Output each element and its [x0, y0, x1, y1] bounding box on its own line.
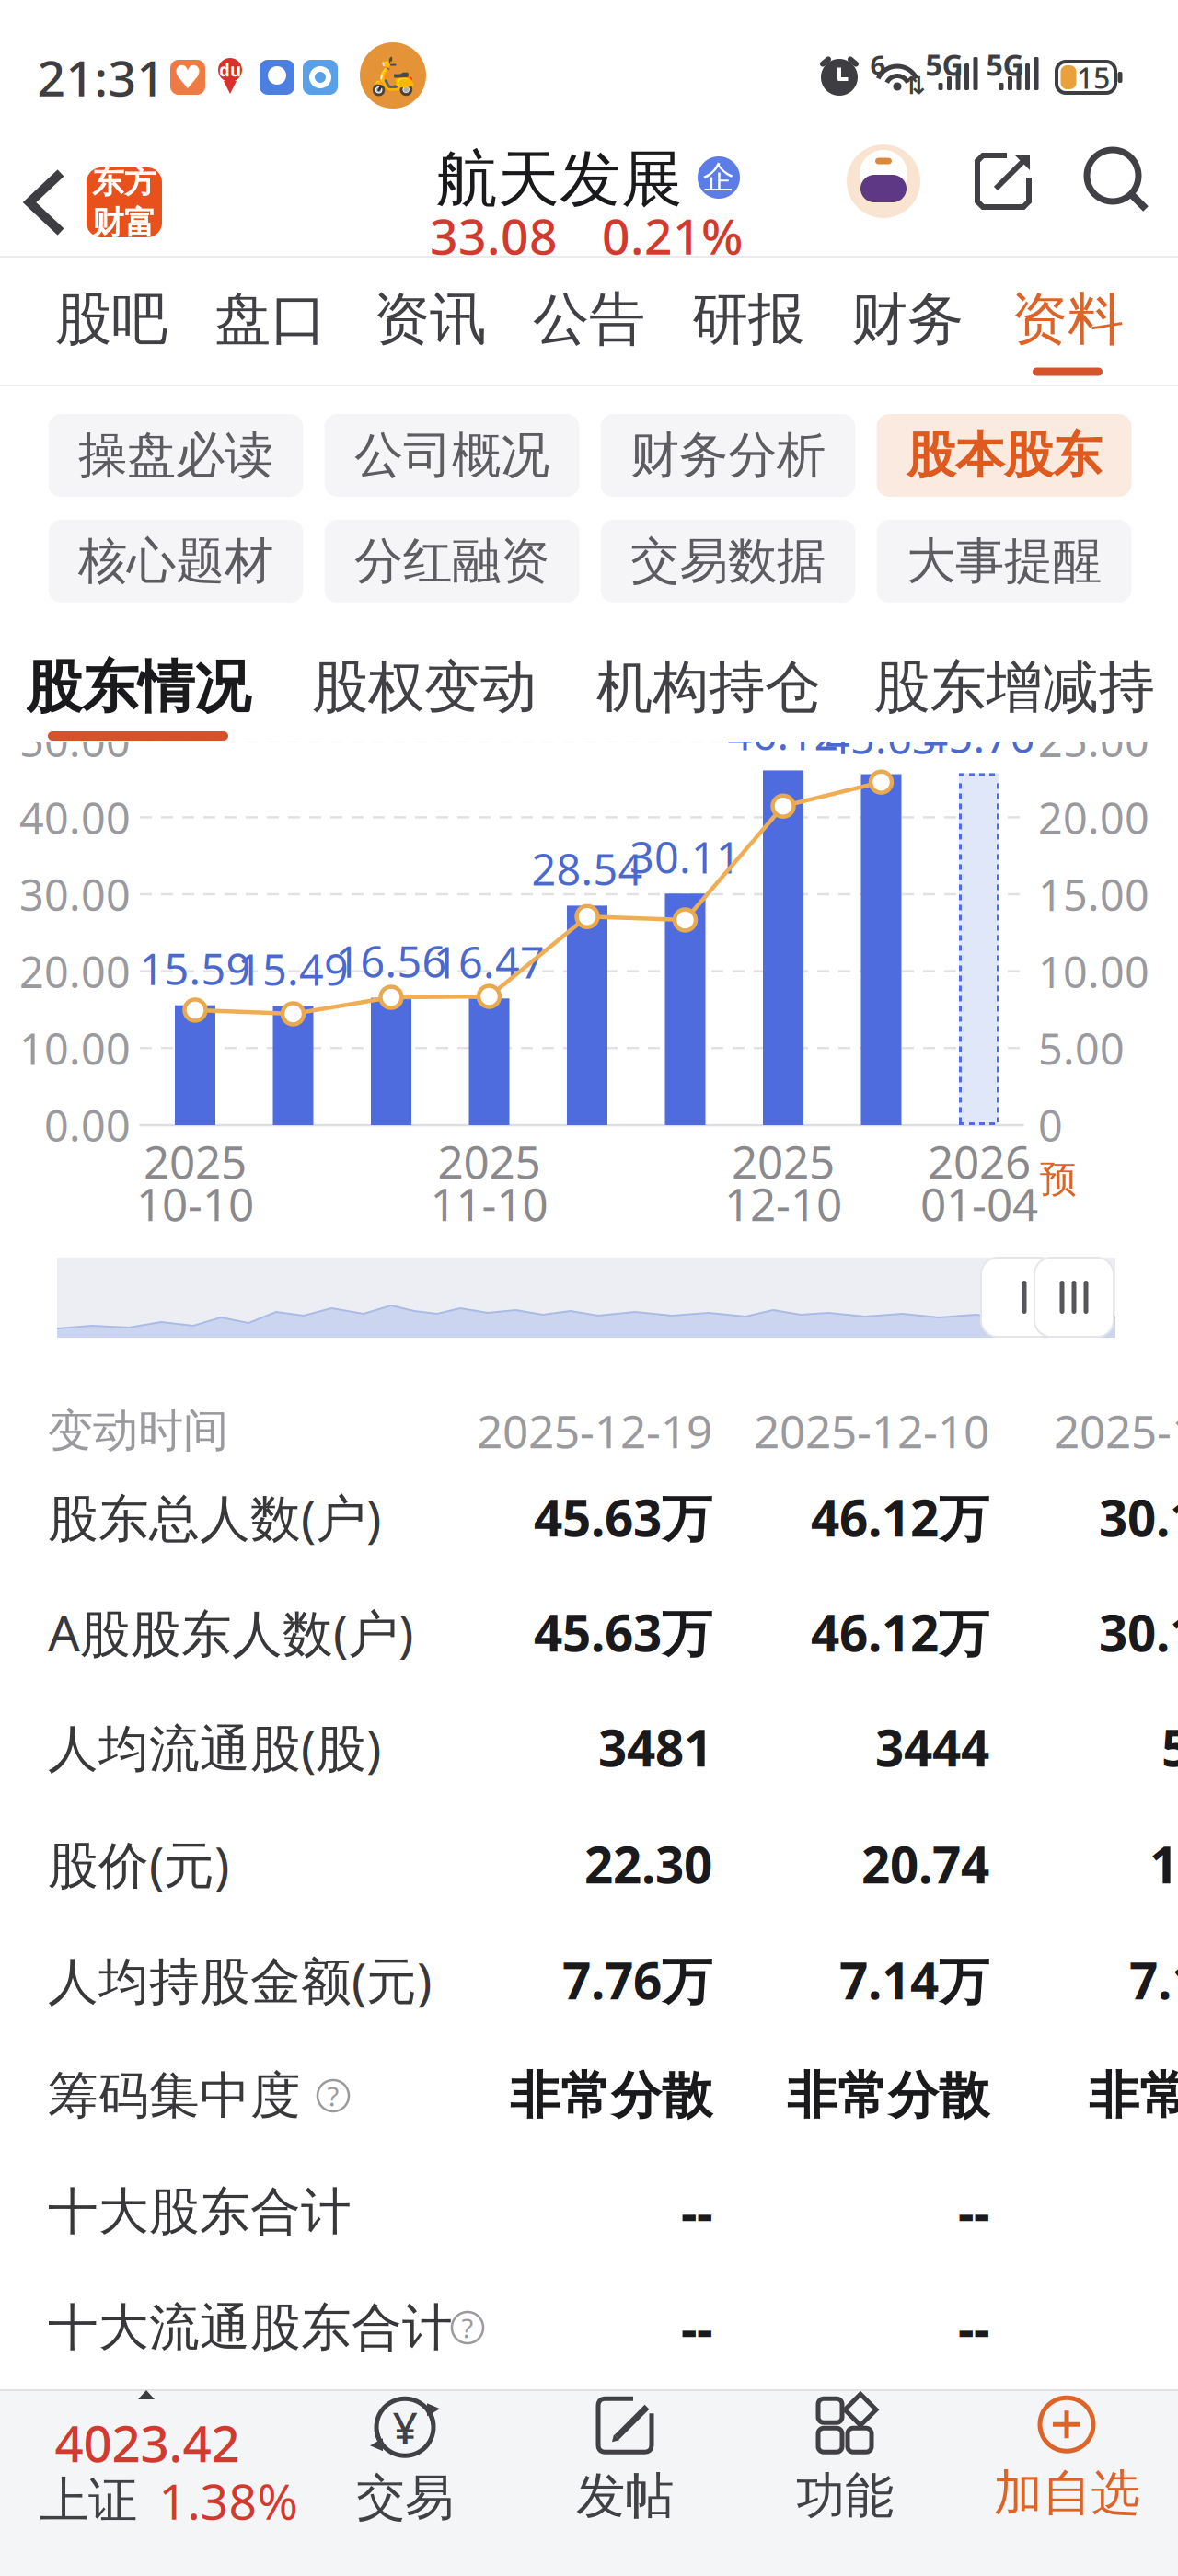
- staticText: 30.1: [1099, 1599, 1178, 1665]
- staticText: 10.00: [19, 1020, 131, 1077]
- button[interactable]: 股本股东: [877, 414, 1132, 497]
- staticText: 交易数据: [630, 531, 826, 591]
- button[interactable]: 核心题材: [48, 520, 303, 603]
- button[interactable]: AI assistant: [847, 144, 920, 218]
- staticText: 十大股东合计: [48, 2181, 352, 2242]
- staticText: ¥: [393, 2398, 417, 2456]
- staticText: 40.00: [19, 789, 131, 846]
- staticText: 15.49: [237, 941, 349, 998]
- button[interactable]: Share: [972, 150, 1034, 213]
- staticText: 筹码集中度: [48, 2065, 301, 2127]
- staticText: 45.63万: [534, 1484, 712, 1550]
- staticText: --: [681, 2178, 712, 2245]
- button[interactable]: 资讯: [374, 285, 486, 354]
- staticText: 45.76: [924, 708, 1035, 765]
- staticText: 5.00: [1038, 1020, 1125, 1077]
- staticText: 12-10: [724, 1173, 842, 1233]
- button[interactable]: 加自选: [965, 2389, 1168, 2529]
- staticText: 盘口: [214, 285, 327, 354]
- staticText: 股权变动: [312, 653, 537, 722]
- staticText: 股东情况: [26, 653, 250, 722]
- staticText: 20.00: [1038, 789, 1149, 846]
- button[interactable]: Search: [1087, 150, 1149, 213]
- staticText: 16.47: [433, 933, 545, 990]
- staticText: 30.00: [19, 866, 131, 923]
- staticText: 2025: [438, 1131, 541, 1191]
- button[interactable]: 机构持仓: [596, 653, 821, 722]
- staticText: 加自选: [993, 2463, 1140, 2523]
- staticText: 0.21%: [602, 203, 743, 268]
- button[interactable]: 股权变动: [312, 653, 537, 722]
- staticText: 操盘必读: [78, 425, 273, 485]
- staticText: 13: [1149, 1831, 1178, 1897]
- staticText: 十大流通股东合计: [48, 2297, 453, 2358]
- staticText: 28.54: [531, 840, 643, 897]
- button[interactable]: 4023.42: [8, 2379, 312, 2526]
- staticText: du: [219, 59, 241, 81]
- staticText: 15.59: [139, 940, 251, 997]
- button[interactable]: 帮助: [315, 2077, 352, 2114]
- staticText: 企: [703, 158, 735, 197]
- staticText: 2026: [928, 1131, 1031, 1191]
- button[interactable]: 公告: [533, 285, 645, 354]
- staticText: 2025: [732, 1131, 835, 1191]
- staticText: 25.00: [1038, 712, 1149, 769]
- staticText: 发帖: [576, 2466, 674, 2526]
- staticText: 01-04: [920, 1173, 1038, 1233]
- staticText: 变动时间: [48, 1403, 228, 1458]
- staticText: 20.00: [19, 943, 131, 1000]
- button[interactable]: 交易数据: [601, 520, 855, 603]
- staticText: 2025-12-19: [477, 1400, 712, 1461]
- staticText: 0: [1038, 1097, 1063, 1154]
- button[interactable]: 功能: [753, 2387, 937, 2531]
- button[interactable]: 帮助: [449, 2309, 486, 2346]
- button[interactable]: Back: [17, 160, 74, 245]
- staticText: 股吧: [55, 285, 167, 354]
- staticText: 5: [1161, 1714, 1178, 1780]
- staticText: 航天发展: [436, 142, 683, 217]
- button[interactable]: 发帖: [533, 2387, 717, 2531]
- staticText: 22.30: [584, 1831, 712, 1897]
- staticText: 非常分散: [510, 2065, 712, 2127]
- staticText: 15: [1077, 58, 1110, 97]
- staticText: 股价(元): [48, 1831, 229, 1897]
- staticText: 2025-12-10: [754, 1400, 989, 1461]
- staticText: 20.74: [861, 1831, 989, 1897]
- button[interactable]: 盘口: [214, 285, 327, 354]
- staticText: 分红融资: [354, 531, 549, 591]
- button[interactable]: 操盘必读: [48, 414, 303, 497]
- button[interactable]: ¥: [313, 2388, 497, 2532]
- staticText: 上证: [40, 2470, 137, 2531]
- button[interactable]: 资料: [1011, 285, 1124, 354]
- staticText: 股东总人数(户): [48, 1484, 381, 1550]
- button[interactable]: 公司概况: [324, 414, 579, 497]
- staticText: 非常分散: [787, 2065, 989, 2127]
- button[interactable]: 财务分析: [601, 414, 855, 497]
- button[interactable]: 财务: [851, 285, 964, 354]
- button[interactable]: 股东情况: [26, 653, 250, 722]
- button[interactable]: 分红融资: [324, 520, 579, 603]
- staticText: ?: [462, 2310, 474, 2346]
- button[interactable]: 股东增减持: [874, 653, 1155, 722]
- staticText: 3481: [598, 1714, 712, 1780]
- staticText: 6: [870, 46, 886, 82]
- staticText: 46.12万: [811, 1484, 989, 1550]
- staticText: 2025-1: [1054, 1400, 1178, 1461]
- staticText: 财富: [92, 203, 156, 243]
- staticText: 16.56: [335, 933, 447, 990]
- staticText: 股东增减持: [874, 653, 1155, 722]
- button[interactable]: 研报: [692, 285, 804, 354]
- staticText: 🛵: [370, 54, 416, 96]
- staticText: 2025: [144, 1131, 247, 1191]
- staticText: 45.63: [826, 709, 937, 766]
- button[interactable]: 东方财富: [87, 162, 162, 243]
- staticText: 5G: [925, 45, 963, 84]
- button[interactable]: 大事提醒: [877, 520, 1132, 603]
- staticText: 15.00: [1038, 866, 1149, 923]
- staticText: 45.63万: [534, 1599, 712, 1665]
- staticText: --: [958, 2178, 989, 2245]
- button[interactable]: 股吧: [55, 285, 167, 354]
- staticText: 30.1: [1099, 1484, 1178, 1550]
- button[interactable]: 收起导航: [981, 1258, 1057, 1337]
- button[interactable]: 展开导航: [1034, 1258, 1114, 1337]
